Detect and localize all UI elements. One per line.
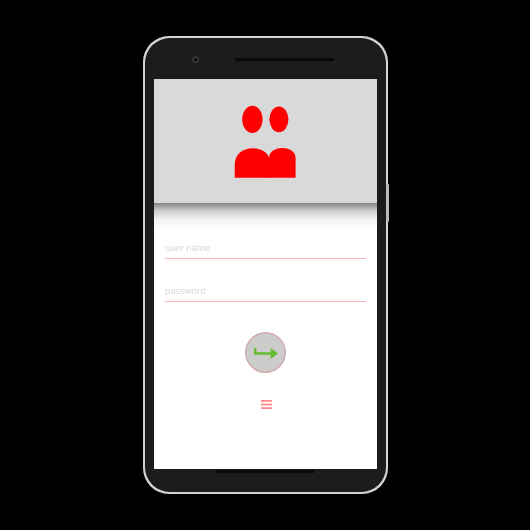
- button[interactable]: Menu: [254, 396, 278, 412]
- staticText: password: [165, 284, 206, 296]
- button[interactable]: Sign in: [245, 332, 286, 373]
- staticText: user name: [165, 241, 211, 253]
- button[interactable]: user name: [165, 241, 366, 259]
- button[interactable]: password: [165, 284, 366, 302]
